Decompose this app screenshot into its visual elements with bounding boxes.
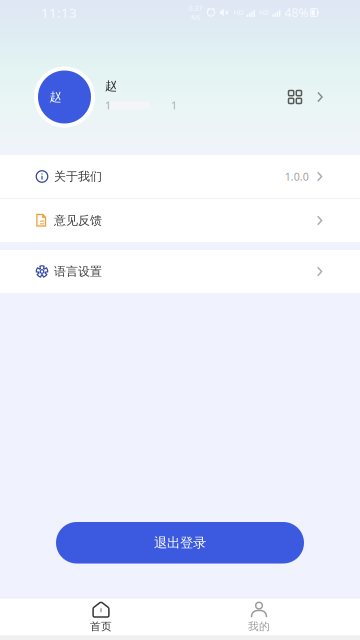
staticText: 11:13 (41, 4, 77, 21)
button[interactable]: 语言设置 (0, 250, 360, 293)
staticText: 1.0.0 (285, 169, 309, 184)
staticText: 意见反馈 (54, 213, 102, 228)
button[interactable]: 退出登录 (56, 522, 304, 563)
staticText: 关于我们 (54, 169, 102, 184)
staticText: HD (233, 8, 243, 17)
staticText: 退出登录 (154, 535, 206, 551)
button[interactable]: 我的 (180, 598, 338, 635)
button[interactable]: 意见反馈 (0, 199, 360, 242)
button[interactable]: 赵 (0, 66, 360, 127)
staticText: 语言设置 (54, 264, 102, 279)
staticText: 首页 (90, 620, 112, 633)
staticText: 48% (284, 4, 308, 20)
staticText: 1 1 (105, 98, 177, 112)
staticText: 赵 (49, 90, 61, 104)
staticText: 我的 (248, 620, 270, 633)
button[interactable]: 关于我们 (0, 155, 360, 198)
staticText: 赵 (105, 78, 117, 93)
button[interactable]: 首页 (22, 598, 180, 635)
staticText: HD (259, 8, 269, 17)
staticText: 0.37 (188, 4, 202, 12)
staticText: K/s (191, 12, 200, 21)
